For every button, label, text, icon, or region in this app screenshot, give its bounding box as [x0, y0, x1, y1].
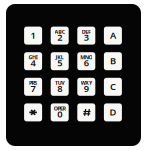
staticText: GHI	[28, 54, 38, 61]
button[interactable]	[77, 103, 95, 121]
staticText: 5	[57, 56, 62, 69]
button[interactable]: PRS	[24, 78, 42, 96]
button[interactable]: JKL	[51, 52, 69, 70]
button[interactable]: TUV	[51, 78, 69, 96]
staticText: 1	[31, 29, 36, 41]
button[interactable]: GHI	[24, 52, 42, 70]
staticText: TUV	[55, 79, 64, 86]
staticText: C	[110, 80, 116, 92]
staticText: B	[110, 54, 116, 67]
button[interactable]: B	[104, 52, 122, 70]
button[interactable]: OPER	[51, 103, 69, 121]
staticText: WXY	[81, 79, 92, 86]
button[interactable]: WXY	[77, 78, 95, 96]
staticText: 3	[84, 31, 89, 43]
button[interactable]: D	[104, 103, 122, 121]
staticText: 6	[84, 56, 89, 69]
staticText: 4	[31, 56, 36, 69]
staticText: 8	[57, 82, 62, 94]
staticText: D	[109, 106, 116, 118]
staticText: A	[110, 29, 116, 41]
staticText: 7	[31, 82, 36, 94]
staticText: 2	[57, 31, 62, 43]
staticText: ABC	[55, 28, 65, 35]
staticText: OPER	[54, 105, 66, 112]
button[interactable]: A	[104, 27, 122, 45]
button[interactable]: 1	[24, 27, 42, 45]
staticText: JKL	[56, 54, 64, 61]
staticText: PRS	[29, 79, 37, 86]
button[interactable]: DEF	[77, 27, 95, 45]
staticText: MNO	[80, 54, 92, 61]
button[interactable]: MNO	[77, 52, 95, 70]
button[interactable]: C	[104, 78, 122, 96]
staticText: 0	[57, 108, 62, 120]
staticText: 9	[84, 82, 89, 94]
button[interactable]: ABC	[51, 27, 69, 45]
staticText: DEF	[82, 28, 91, 35]
button[interactable]	[24, 103, 42, 121]
